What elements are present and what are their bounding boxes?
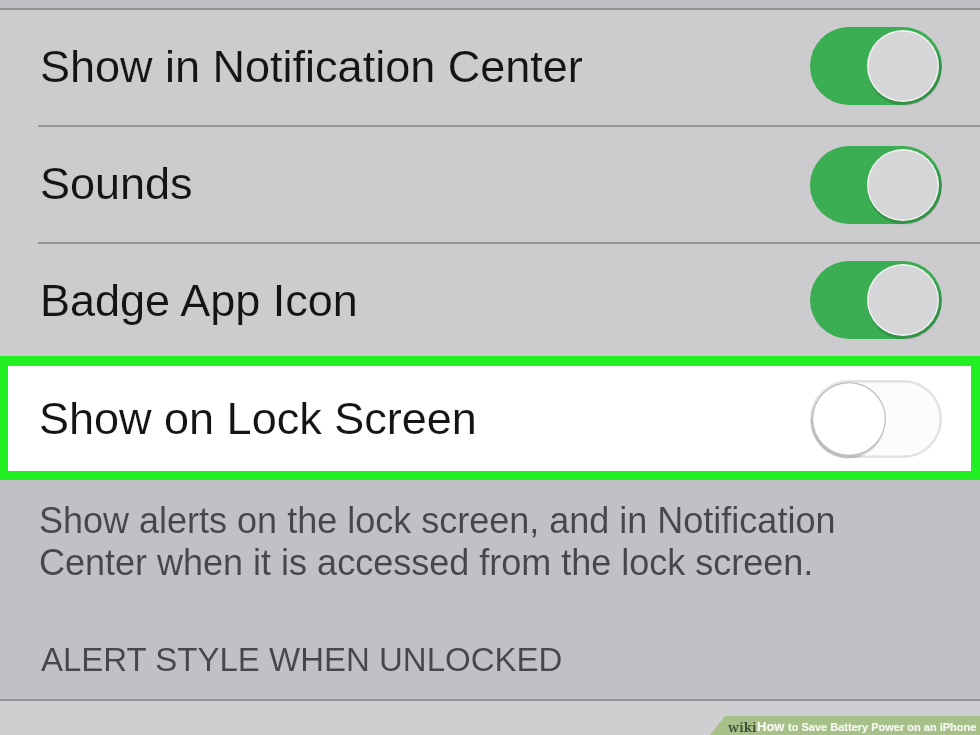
button[interactable]: wikiHow watermark: [710, 716, 980, 735]
button[interactable]: Show in Notification Center: [0, 10, 980, 125]
staticText: Show alerts on the lock screen, and in N…: [39, 500, 836, 583]
staticText: Badge App Icon: [40, 275, 810, 325]
button[interactable]: Sounds, on: [810, 146, 942, 224]
staticText: ALERT STYLE WHEN UNLOCKED: [41, 641, 563, 678]
staticText: How: [757, 719, 785, 734]
staticText: Show on Lock Screen: [39, 393, 810, 443]
button[interactable]: Show on Lock Screen: [8, 366, 971, 471]
button[interactable]: Badge App Icon: [0, 244, 980, 356]
staticText: Sounds: [40, 158, 810, 208]
staticText: to Save Battery Power on an iPhone: [785, 721, 977, 733]
button[interactable]: Show in Notification Center, on: [810, 27, 942, 105]
button[interactable]: Badge App Icon, on: [810, 261, 942, 339]
button[interactable]: Show on Lock Screen, off: [810, 380, 942, 458]
staticText: wiki: [728, 718, 757, 735]
staticText: Show in Notification Center: [40, 41, 810, 91]
button[interactable]: Sounds: [0, 127, 980, 242]
